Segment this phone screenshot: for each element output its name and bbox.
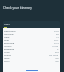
staticText: 14 (56, 35, 59, 38)
staticText: Departure (4, 29, 16, 32)
staticText: On time (49, 53, 59, 56)
staticText: Yes (55, 59, 59, 62)
button[interactable]: Baggage (3, 47, 60, 50)
staticText: Terminal (4, 32, 14, 35)
button[interactable]: Status (3, 53, 60, 56)
button[interactable]: Seat (3, 38, 60, 41)
staticText: Check your itinerary (3, 6, 32, 10)
staticText: Flight (4, 23, 10, 26)
staticText: Arrival (4, 44, 12, 47)
button[interactable]: Flight (3, 21, 60, 27)
staticText: 9:40 (54, 29, 59, 32)
staticText: Seat (4, 38, 9, 41)
button[interactable]: Class (3, 50, 60, 53)
button[interactable]: Terminal (3, 32, 60, 35)
button[interactable]: Departure (3, 29, 60, 32)
staticText: Eco (55, 50, 59, 53)
staticText: Gate (4, 35, 10, 38)
staticText: B2 (56, 32, 59, 35)
staticText: Boarding (4, 41, 15, 44)
staticText: 9:10 (54, 41, 59, 44)
button[interactable]: Gate (3, 35, 60, 38)
button[interactable]: Arrival (3, 44, 60, 47)
staticText: 23A (54, 38, 59, 41)
button[interactable]: Meal (3, 56, 60, 59)
staticText: Baggage (4, 47, 14, 50)
staticText: 12:05 (52, 44, 59, 47)
button[interactable]: Boarding (3, 41, 60, 44)
button[interactable]: Wi-Fi (3, 59, 60, 62)
staticText: Yes (55, 56, 59, 59)
staticText: Meal (4, 56, 10, 59)
staticText: 2 (57, 47, 59, 50)
staticText: Status (4, 53, 12, 56)
staticText: Class (4, 50, 10, 53)
staticText: Wi-Fi (4, 59, 10, 62)
